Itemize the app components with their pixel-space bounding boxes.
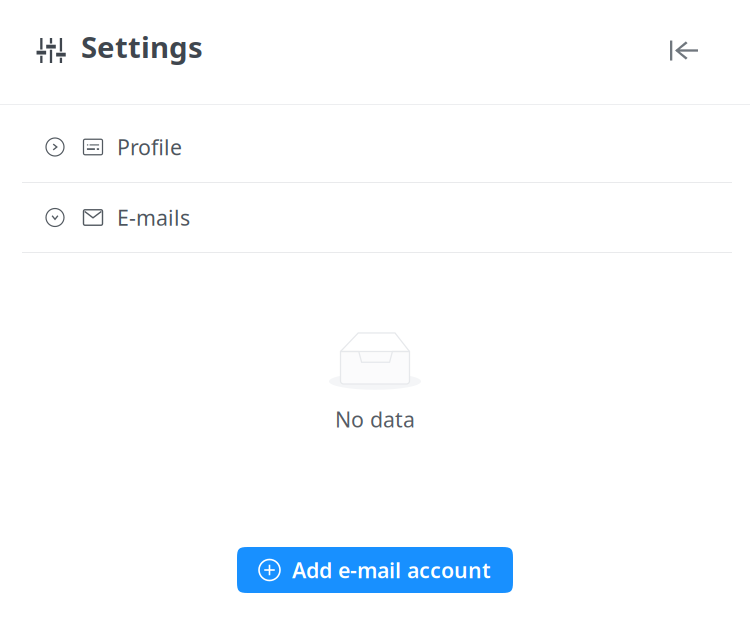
button[interactable]: E-mails — [0, 183, 750, 252]
button[interactable]: Profile — [0, 112, 750, 182]
button[interactable]: Add e-mail account — [237, 547, 513, 593]
button[interactable]: Adjust settings — [37, 26, 65, 74]
staticText: Add e-mail account — [292, 556, 491, 584]
staticText: E-mails — [117, 203, 190, 232]
staticText: Settings — [81, 27, 203, 66]
button[interactable]: Collapse sidebar — [670, 26, 698, 74]
staticText: No data — [335, 405, 415, 433]
staticText: Profile — [117, 133, 182, 161]
